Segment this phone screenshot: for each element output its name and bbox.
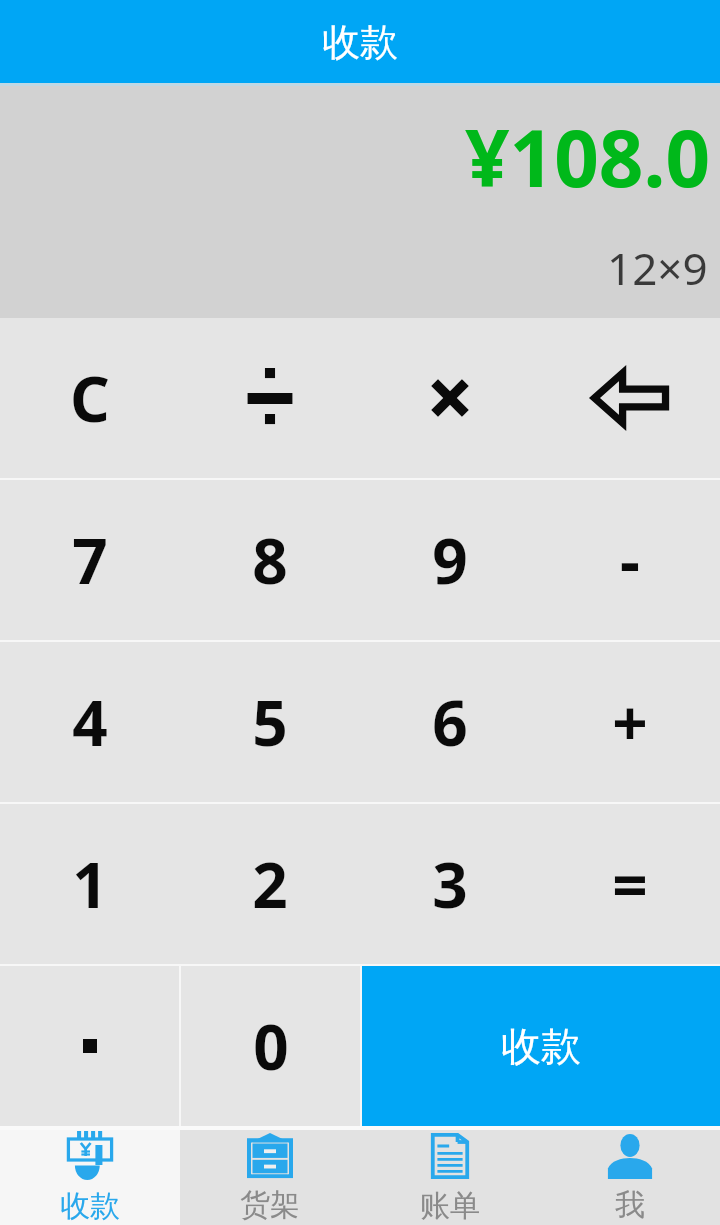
staticText: 9 (432, 518, 468, 602)
other: 收款 (63, 1131, 117, 1181)
button[interactable]: C (0, 318, 180, 478)
other: Divide (242, 370, 298, 426)
button[interactable]: - (540, 480, 720, 640)
button[interactable] (0, 966, 179, 1126)
button[interactable]: 6 (360, 642, 540, 802)
button[interactable]: 7 (0, 480, 180, 640)
button[interactable]: 收款 (362, 966, 720, 1126)
staticText: 4 (72, 680, 108, 764)
staticText: 6 (432, 680, 468, 764)
other: 账单 (429, 1131, 471, 1181)
button[interactable]: + (540, 642, 720, 802)
button[interactable]: 2 (180, 804, 360, 964)
staticText: 账单 (420, 1187, 480, 1225)
other: 货架 (245, 1132, 295, 1180)
staticText: 12×9 (607, 238, 708, 298)
staticText: 0 (253, 1004, 289, 1088)
button[interactable]: 收款 (0, 1130, 180, 1225)
staticText: 货架 (240, 1186, 300, 1224)
staticText: 1 (72, 842, 108, 926)
other: 我 (606, 1132, 654, 1180)
other: Backspace (593, 372, 667, 424)
staticText: 收款 (501, 1021, 581, 1071)
button[interactable]: 8 (180, 480, 360, 640)
staticText: 2 (252, 842, 288, 926)
button[interactable]: 我 (540, 1130, 720, 1225)
staticText: 收款 (322, 18, 398, 66)
staticText: 收款 (60, 1187, 120, 1225)
staticText: 7 (72, 518, 108, 602)
staticText: 3 (432, 842, 468, 926)
button[interactable]: 货架 (180, 1130, 360, 1225)
button[interactable]: Multiply (360, 318, 540, 478)
staticText: + (612, 680, 648, 764)
button[interactable]: 4 (0, 642, 180, 802)
staticText: 8 (252, 518, 288, 602)
button[interactable]: 9 (360, 480, 540, 640)
button[interactable]: 1 (0, 804, 180, 964)
button[interactable]: Backspace (540, 318, 720, 478)
button[interactable]: 账单 (360, 1130, 540, 1225)
button[interactable]: = (540, 804, 720, 964)
staticText: - (620, 518, 640, 602)
button[interactable]: Divide (180, 318, 360, 478)
staticText: = (612, 842, 648, 926)
staticText: 我 (615, 1186, 645, 1224)
button[interactable]: 5 (180, 642, 360, 802)
other: Multiply (426, 374, 474, 422)
staticText: 5 (252, 680, 288, 764)
button[interactable]: 3 (360, 804, 540, 964)
staticText: C (70, 356, 110, 440)
staticText: ¥108.0 (465, 104, 710, 210)
button[interactable]: 0 (181, 966, 360, 1126)
